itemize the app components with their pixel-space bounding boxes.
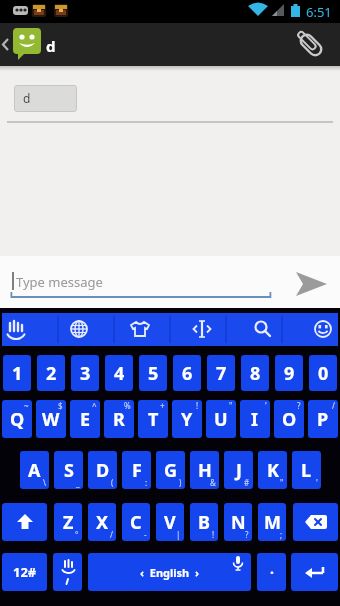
button[interactable]: O [274, 400, 304, 438]
staticText: \ [43, 477, 46, 488]
button[interactable] [58, 313, 114, 346]
button[interactable]: Z [54, 503, 82, 541]
button[interactable]: I [240, 400, 270, 438]
staticText: Type message [16, 273, 103, 291]
staticText: D [96, 458, 110, 483]
button[interactable] [53, 553, 82, 591]
staticText: 0 [318, 361, 329, 386]
staticText: W [42, 407, 60, 432]
staticText: ' [265, 400, 267, 411]
staticText: 9 [284, 361, 295, 386]
staticText: ; [280, 529, 283, 540]
staticText: ^ [92, 400, 97, 411]
staticText: O [282, 407, 297, 432]
button[interactable] [226, 313, 282, 346]
staticText: | [176, 529, 181, 540]
staticText: R [113, 407, 125, 432]
staticText: A [28, 458, 41, 483]
button[interactable]: K [258, 451, 287, 489]
staticText: ' [316, 477, 318, 488]
button[interactable] [291, 553, 338, 591]
staticText: L [301, 458, 312, 483]
staticText: 1 [12, 361, 23, 386]
staticText: ° [75, 529, 79, 540]
staticText: 8 [250, 361, 261, 386]
staticText: ( [111, 477, 114, 488]
button[interactable]: N [224, 503, 252, 541]
button[interactable]: 7 [207, 355, 235, 391]
button[interactable]: 1 [3, 355, 31, 391]
button[interactable]: H [190, 451, 219, 489]
staticText: K [267, 458, 279, 483]
staticText: ! [196, 400, 199, 411]
button[interactable]: 9 [275, 355, 303, 391]
staticText: Q [10, 407, 25, 432]
button[interactable]: G [156, 451, 185, 489]
button[interactable]: J [224, 451, 253, 489]
button[interactable]: 0 [309, 355, 337, 391]
button[interactable]: . [257, 553, 286, 591]
button[interactable]: Q [2, 400, 32, 438]
staticText: T [148, 407, 159, 432]
staticText: / [332, 400, 335, 411]
button[interactable] [2, 503, 47, 541]
staticText: % [124, 400, 131, 411]
button[interactable]: 2 [37, 355, 65, 391]
button[interactable]: C [122, 503, 150, 541]
button[interactable]: E [70, 400, 100, 438]
staticText: ) [179, 477, 182, 488]
staticText: " [280, 477, 284, 488]
staticText: 6:51 [306, 3, 332, 21]
button[interactable]: X [88, 503, 116, 541]
staticText: " [229, 400, 233, 411]
button[interactable]: Y [172, 400, 202, 438]
button[interactable]: R [104, 400, 134, 438]
button[interactable] [285, 264, 335, 304]
staticText: $ [58, 400, 63, 411]
staticText: / [110, 529, 113, 540]
button[interactable]: L [292, 451, 321, 489]
button[interactable]: 3 [71, 355, 99, 391]
button[interactable]: B [190, 503, 218, 541]
button[interactable]: 5 [139, 355, 167, 391]
button[interactable] [114, 313, 170, 346]
button[interactable] [282, 313, 338, 346]
staticText: . [270, 559, 274, 578]
button[interactable] [293, 503, 338, 541]
button[interactable]: V [156, 503, 184, 541]
button[interactable]: 6 [173, 355, 201, 391]
button[interactable]: 8 [241, 355, 269, 391]
staticText: H [198, 458, 212, 483]
staticText: 4 [114, 361, 125, 386]
button[interactable] [292, 26, 330, 64]
button[interactable]: P [308, 400, 338, 438]
button[interactable] [2, 313, 58, 346]
button[interactable]: 12# [2, 553, 47, 591]
staticText: d [46, 36, 56, 56]
button[interactable]: W [36, 400, 66, 438]
button[interactable]: S [54, 451, 83, 489]
button[interactable]: F [122, 451, 151, 489]
button[interactable]: ‹ English › [88, 553, 251, 591]
button[interactable]: T [138, 400, 168, 438]
staticText: V [164, 510, 176, 535]
button[interactable] [170, 313, 226, 346]
button[interactable] [12, 27, 42, 63]
button[interactable]: M [258, 503, 286, 541]
staticText: 12# [13, 563, 37, 581]
staticText: 6 [182, 361, 193, 386]
staticText: ? [297, 400, 301, 411]
button[interactable]: A [20, 451, 49, 489]
staticText: 2 [46, 361, 57, 386]
staticText: ? [245, 529, 249, 540]
button[interactable]: 4 [105, 355, 133, 391]
staticText: M [264, 510, 281, 535]
staticText: 5 [148, 361, 159, 386]
staticText: B [198, 510, 210, 535]
button[interactable]: D [88, 451, 117, 489]
button[interactable]: U [206, 400, 236, 438]
staticText: 3 [80, 361, 91, 386]
staticText: U [214, 407, 228, 432]
staticText: + [160, 400, 165, 411]
button[interactable]: d [14, 85, 77, 112]
